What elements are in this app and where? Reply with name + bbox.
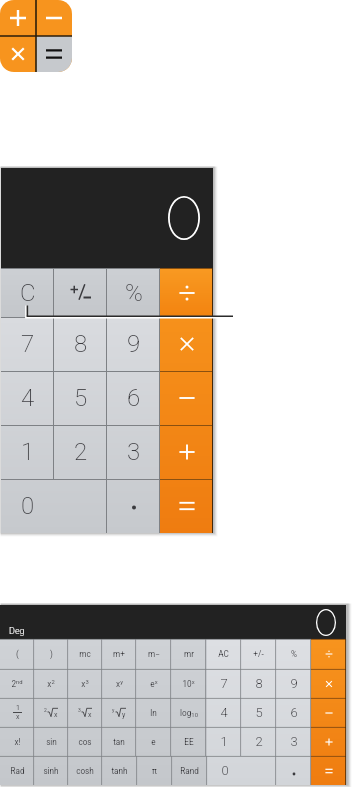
- button[interactable]: Decimal point: [107, 479, 160, 533]
- staticText: 6: [290, 705, 298, 720]
- button[interactable]: C: [1, 268, 54, 317]
- button[interactable]: 9: [276, 669, 311, 698]
- staticText: 7: [220, 676, 228, 691]
- staticText: %: [291, 649, 297, 659]
- staticText: x: [54, 711, 58, 719]
- button[interactable]: y: [102, 698, 136, 727]
- staticText: e: [151, 737, 156, 747]
- button[interactable]: [311, 727, 346, 756]
- button[interactable]: 6: [276, 698, 311, 727]
- button[interactable]: 0: [207, 756, 276, 785]
- button[interactable]: [311, 698, 346, 727]
- button[interactable]: Rad: [0, 756, 34, 785]
- button[interactable]: mr: [171, 639, 206, 669]
- staticText: 10x: [182, 679, 195, 689]
- button[interactable]: tanh: [102, 756, 137, 785]
- staticText: 2: [255, 734, 263, 749]
- button[interactable]: cosh: [68, 756, 102, 785]
- staticText: x3: [81, 679, 89, 689]
- button[interactable]: +/-: [241, 639, 276, 669]
- button[interactable]: 3: [68, 698, 102, 727]
- button[interactable]: 7: [206, 669, 241, 698]
- staticText: 8: [74, 330, 88, 358]
- staticText: 2: [74, 438, 88, 466]
- button[interactable]: Plus minus: [54, 268, 107, 317]
- staticText: 3: [290, 734, 298, 749]
- button[interactable]: 0: [1, 479, 107, 533]
- button[interactable]: 2: [241, 727, 276, 756]
- button[interactable]: 1: [0, 698, 34, 727]
- staticText: 5: [255, 705, 263, 720]
- button[interactable]: 9: [107, 317, 160, 371]
- button[interactable]: mc: [68, 639, 102, 669]
- staticText: 4: [220, 705, 228, 720]
- button[interactable]: sinh: [34, 756, 68, 785]
- button[interactable]: ): [34, 639, 68, 669]
- staticText: 0: [221, 763, 229, 778]
- staticText: xy: [116, 679, 123, 689]
- button[interactable]: ln: [136, 698, 171, 727]
- button[interactable]: ex: [136, 669, 171, 698]
- button[interactable]: xy: [102, 669, 136, 698]
- button[interactable]: 6: [107, 371, 160, 425]
- button[interactable]: %: [107, 268, 160, 317]
- staticText: 4: [21, 384, 35, 412]
- button[interactable]: Rand: [172, 756, 207, 785]
- button[interactable]: x3: [68, 669, 102, 698]
- button[interactable]: %: [276, 639, 311, 669]
- button[interactable]: 10x: [171, 669, 206, 698]
- button[interactable]: 2: [54, 425, 107, 479]
- button[interactable]: 3: [276, 727, 311, 756]
- button[interactable]: Multiply: [160, 317, 213, 371]
- button[interactable]: 8: [241, 669, 276, 698]
- button[interactable]: Divide: [160, 268, 213, 317]
- button[interactable]: EE: [171, 727, 206, 756]
- button[interactable]: x!: [0, 727, 34, 756]
- button[interactable]: 5: [54, 371, 107, 425]
- button[interactable]: [311, 756, 346, 785]
- button[interactable]: 2: [34, 698, 68, 727]
- staticText: x: [16, 713, 20, 721]
- button[interactable]: [276, 756, 311, 785]
- staticText: Rad: [10, 766, 25, 776]
- button[interactable]: log10: [171, 698, 206, 727]
- staticText: 1: [220, 734, 228, 749]
- staticText: (: [16, 649, 19, 659]
- staticText: Rand: [180, 766, 199, 776]
- button[interactable]: [311, 639, 346, 669]
- button[interactable]: 3: [107, 425, 160, 479]
- staticText: 0: [21, 492, 35, 520]
- button[interactable]: 5: [241, 698, 276, 727]
- button[interactable]: x2: [34, 669, 68, 698]
- button[interactable]: 7: [1, 317, 54, 371]
- staticText: AC: [218, 649, 229, 659]
- button[interactable]: π: [137, 756, 172, 785]
- staticText: sinh: [43, 766, 59, 776]
- button[interactable]: Equals: [160, 479, 213, 533]
- button[interactable]: 1: [206, 727, 241, 756]
- staticText: mr: [184, 649, 194, 659]
- button[interactable]: Calculator app icon: [0, 0, 72, 72]
- button[interactable]: AC: [206, 639, 241, 669]
- button[interactable]: 4: [1, 371, 54, 425]
- button[interactable]: tan: [102, 727, 136, 756]
- button[interactable]: sin: [34, 727, 68, 756]
- staticText: m+: [113, 649, 125, 659]
- button[interactable]: e: [136, 727, 171, 756]
- button[interactable]: Subtract: [160, 371, 213, 425]
- button[interactable]: 8: [54, 317, 107, 371]
- button[interactable]: (: [0, 639, 34, 669]
- button[interactable]: cos: [68, 727, 102, 756]
- staticText: y: [122, 711, 126, 719]
- button[interactable]: 1: [1, 425, 54, 479]
- button[interactable]: m−: [136, 639, 171, 669]
- staticText: x2: [47, 679, 55, 689]
- button[interactable]: 4: [206, 698, 241, 727]
- button[interactable]: 2nd: [0, 669, 34, 698]
- button[interactable]: Add: [160, 425, 213, 479]
- staticText: Deg: [9, 626, 25, 637]
- button[interactable]: m+: [102, 639, 136, 669]
- button[interactable]: [311, 669, 346, 698]
- staticText: m−: [148, 649, 160, 659]
- staticText: y: [112, 707, 115, 713]
